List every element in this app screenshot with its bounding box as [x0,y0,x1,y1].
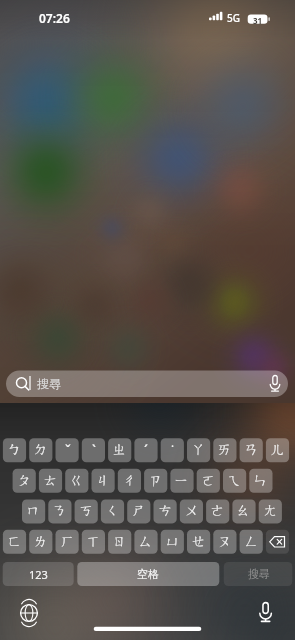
button[interactable]: ㄡ [213,530,236,554]
staticText: ㄜ [210,502,225,520]
staticText: 31 [253,15,263,26]
button[interactable]: ㄧ [170,469,193,493]
button[interactable]: ㄢ [240,438,263,462]
staticText: ㄠ [236,502,251,520]
button[interactable]: ㄅ [3,438,26,462]
button[interactable]: ㄣ [249,469,272,493]
button[interactable]: ˙ [161,438,184,462]
button[interactable]: ˊ [134,438,157,462]
staticText: ㄞ [217,441,232,459]
button[interactable]: ˋ [82,438,105,462]
staticText: ˊ [144,441,148,460]
staticText: ㄕ [131,502,146,520]
staticText: ㄖ [112,533,127,551]
staticText: ㄋ [52,502,67,520]
button[interactable]: ㄔ [118,469,141,493]
button[interactable]: ㄨ [180,499,203,523]
staticText: ㄈ [7,533,22,551]
button[interactable]: ㄓ [108,438,131,462]
button[interactable]: ㄤ [259,499,282,523]
button[interactable]: 空格 [77,562,219,586]
staticText: ˙ [171,441,174,460]
button[interactable]: ˇ [56,438,79,462]
button[interactable]: 搜尋 [224,562,293,586]
button[interactable]: Dictation [254,600,278,624]
staticText: ㄛ [201,472,216,490]
staticText: ㄒ [86,533,101,551]
button[interactable]: 123 [3,562,74,586]
button[interactable]: ㄏ [56,530,79,554]
staticText: ˋ [92,441,96,460]
button[interactable]: ㄉ [29,438,52,462]
button[interactable]: Switch keyboard [17,601,41,625]
staticText: ㄢ [244,441,259,459]
button[interactable]: ㄆ [13,469,36,493]
staticText: ㄊ [43,472,58,490]
button[interactable]: ㄇ [22,499,45,523]
button[interactable]: ㄩ [161,530,184,554]
button[interactable]: ㄜ [206,499,229,523]
staticText: ㄏ [60,533,75,551]
button[interactable]: ㄑ [101,499,124,523]
staticText: ㄌ [33,533,48,551]
button[interactable]: ㄈ [3,530,26,554]
staticText: ㄣ [253,472,268,490]
staticText: ㄝ [191,533,206,551]
button[interactable]: ㄕ [127,499,150,523]
button[interactable]: ㄚ [187,438,210,462]
staticText: ㄥ [244,533,259,551]
button[interactable]: ㄟ [223,469,246,493]
button[interactable]: ㄎ [75,499,98,523]
button[interactable]: ㄊ [39,469,62,493]
staticText: 空格 [137,567,159,581]
button[interactable]: ㄍ [65,469,88,493]
staticText: 123 [29,567,48,582]
button[interactable]: ㄙ [134,530,157,554]
button[interactable]: ㄠ [232,499,255,523]
button[interactable]: ㄘ [154,499,177,523]
button[interactable]: ㄋ [48,499,71,523]
button[interactable]: ㄐ [91,469,114,493]
staticText: ㄍ [69,472,84,490]
button[interactable]: ㄦ [266,438,289,462]
staticText: ㄧ [174,472,189,490]
staticText: ㄨ [184,502,199,520]
staticText: ㄤ [263,502,278,520]
staticText: ㄑ [105,502,120,520]
staticText: ㄎ [79,502,94,520]
staticText: ㄓ [112,441,127,459]
staticText: ㄇ [26,502,41,520]
staticText: ㄐ [95,472,110,490]
button[interactable]: ㄗ [144,469,167,493]
staticText: ㄡ [217,533,232,551]
button[interactable]: ㄖ [108,530,131,554]
button[interactable]: ㄥ [240,530,263,554]
staticText: ㄅ [7,441,22,459]
button[interactable]: ㄝ [187,530,210,554]
staticText: ㄦ [270,441,285,459]
button[interactable]: ㄛ [197,469,220,493]
staticText: ˇ [65,441,71,460]
staticText: 搜尋 [248,567,270,581]
staticText: ㄙ [138,533,153,551]
button[interactable]: Backspace [266,530,289,554]
staticText: ㄔ [122,472,137,490]
staticText: ㄗ [148,472,163,490]
staticText: ㄟ [227,472,242,490]
staticText: ㄩ [165,533,180,551]
staticText: ㄆ [17,472,32,490]
button[interactable]: ㄞ [213,438,236,462]
staticText: ㄉ [33,441,48,459]
staticText: 搜尋 [37,376,61,391]
button[interactable]: ㄌ [29,530,52,554]
staticText: ㄚ [191,441,206,459]
staticText: ㄘ [158,502,173,520]
staticText: 07:26 [39,10,70,26]
staticText: 5G [227,11,240,25]
button[interactable]: ㄒ [82,530,105,554]
button[interactable]: 搜尋 [6,371,288,398]
